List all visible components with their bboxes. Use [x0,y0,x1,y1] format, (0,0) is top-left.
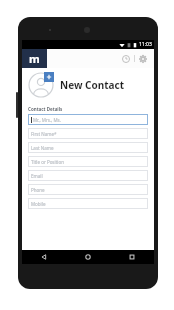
button[interactable]: Mobile [28,198,148,209]
button[interactable]: Last Name [28,142,148,153]
button[interactable]: Add contact photo [28,72,54,98]
staticText: First Name* [31,131,57,137]
staticText: Last Name [31,145,54,151]
button[interactable]: Settings [135,49,151,68]
staticText: Mr., Mrs., Ms. [33,117,61,123]
button[interactable]: Home [66,250,110,264]
staticText: Contact Details [28,106,63,112]
staticText: Phone [31,187,45,193]
staticText: New Contact [60,78,125,92]
button[interactable]: Menu [22,49,47,68]
button[interactable]: History [118,49,134,68]
button[interactable]: Mr., Mrs., Ms. [28,114,148,125]
staticText: 11:03 [139,41,152,48]
staticText: Title or Position [31,159,64,165]
staticText: Email [31,173,43,179]
button[interactable]: Email [28,170,148,181]
button[interactable]: Title or Position [28,156,148,167]
button[interactable]: Phone [28,184,148,195]
staticText: Mobile [31,201,46,207]
staticText: m [29,51,40,66]
button[interactable]: Recent apps [110,250,154,264]
button[interactable]: Back [22,250,66,264]
button[interactable]: First Name* [28,128,148,139]
